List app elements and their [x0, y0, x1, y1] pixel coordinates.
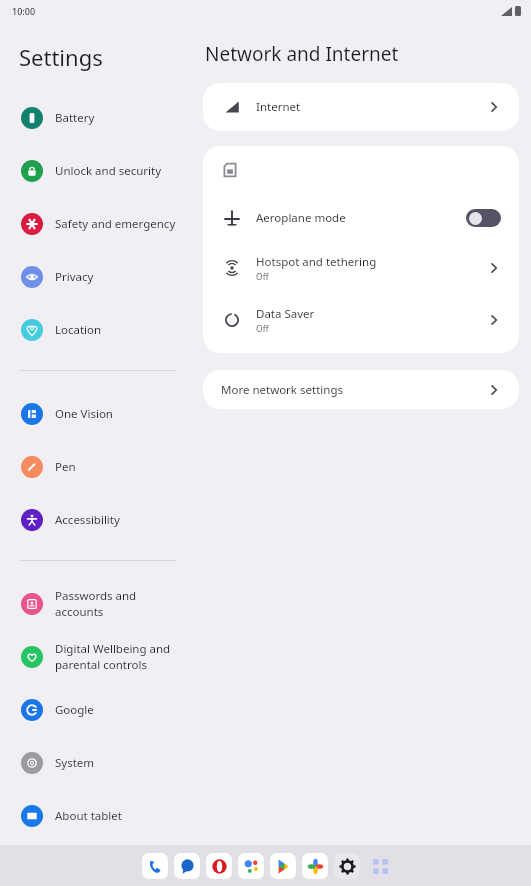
other: SIM card: [222, 162, 238, 178]
staticText: About tablet: [55, 808, 122, 824]
staticText: One Vision: [55, 406, 113, 422]
staticText: Hotspot and tethering: [256, 254, 377, 270]
button[interactable]: Photos: [302, 853, 328, 879]
button[interactable]: More network settings: [203, 370, 519, 409]
staticText: 10:00: [12, 5, 36, 17]
button[interactable]: Opera: [206, 853, 232, 879]
button[interactable]: Google: [0, 683, 200, 736]
staticText: Unlock and security: [55, 163, 162, 179]
staticText: Battery: [55, 110, 95, 126]
staticText: Accessibility: [55, 512, 120, 528]
button[interactable]: Data Saver: [203, 294, 519, 346]
button[interactable]: All apps: [367, 853, 393, 879]
staticText: Passwords and accounts: [55, 588, 137, 619]
button[interactable]: Phone: [142, 853, 168, 879]
staticText: Safety and emergency: [55, 216, 176, 232]
button[interactable]: Pen: [0, 440, 200, 493]
button[interactable]: Aeroplane mode toggle: [466, 209, 501, 227]
staticText: Location: [55, 322, 102, 338]
staticText: Internet: [256, 99, 301, 115]
button[interactable]: About tablet: [0, 789, 200, 842]
button[interactable]: SIM card: [203, 146, 519, 194]
button[interactable]: Safety and emergency: [0, 197, 200, 250]
button[interactable]: System: [0, 736, 200, 789]
staticText: Aeroplane mode: [256, 210, 346, 226]
button[interactable]: Assistant: [238, 853, 264, 879]
button[interactable]: Location: [0, 303, 200, 356]
staticText: Google: [55, 702, 94, 718]
staticText: Off: [256, 271, 269, 283]
button[interactable]: Internet: [203, 83, 519, 131]
staticText: System: [55, 755, 95, 771]
button[interactable]: Messages: [174, 853, 200, 879]
staticText: Settings: [19, 42, 103, 72]
button[interactable]: Settings: [334, 853, 360, 879]
button[interactable]: Accessibility: [0, 493, 200, 546]
staticText: Off: [256, 323, 269, 335]
button[interactable]: Digital Wellbeing and parental controls: [0, 630, 200, 683]
staticText: Privacy: [55, 269, 94, 285]
staticText: More network settings: [221, 382, 487, 398]
button[interactable]: Aeroplane mode: [203, 194, 519, 242]
button[interactable]: Passwords and accounts: [0, 577, 200, 630]
staticText: Digital Wellbeing and parental controls: [55, 641, 171, 672]
button[interactable]: One Vision: [0, 387, 200, 440]
button[interactable]: Battery: [0, 91, 200, 144]
button[interactable]: Play Store: [270, 853, 296, 879]
staticText: Network and Internet: [205, 41, 399, 67]
staticText: Data Saver: [256, 306, 315, 322]
button[interactable]: Hotspot and tethering: [203, 242, 519, 294]
button[interactable]: Unlock and security: [0, 144, 200, 197]
button[interactable]: Privacy: [0, 250, 200, 303]
staticText: Pen: [55, 459, 76, 475]
